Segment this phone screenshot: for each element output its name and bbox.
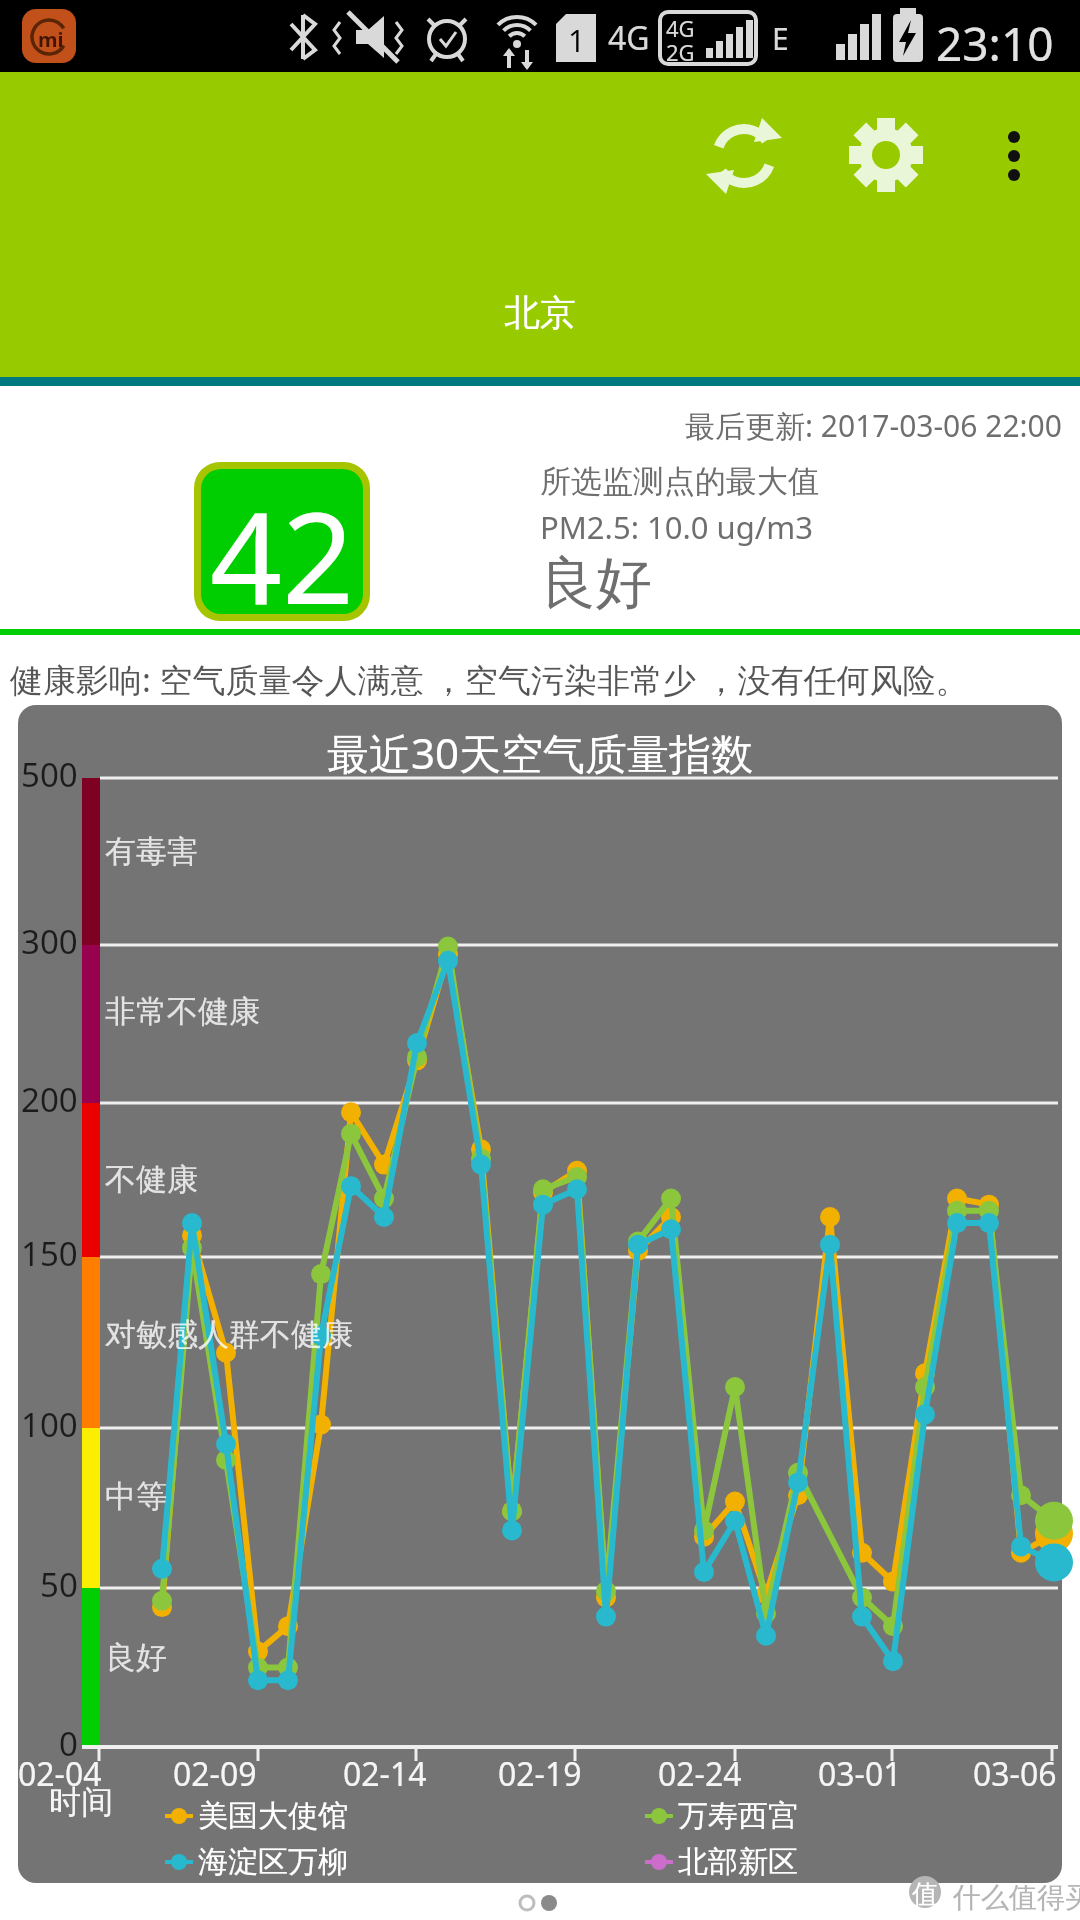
staticText: 300 xyxy=(21,919,78,964)
staticText: 0 xyxy=(59,1721,78,1766)
staticText: 03-06 xyxy=(973,1752,1057,1796)
staticText: 北部新区 xyxy=(678,1843,798,1881)
staticText: 50 xyxy=(40,1562,78,1607)
staticText: 值 xyxy=(912,1878,938,1911)
staticText: 42 xyxy=(210,469,355,614)
staticText: 美国大使馆 xyxy=(198,1797,348,1835)
staticText: 健康影响: 空气质量令人满意 ，空气污染非常少 ，没有任何风险。 xyxy=(10,657,969,702)
staticText: 非常不健康 xyxy=(105,992,260,1031)
button[interactable] xyxy=(848,118,924,194)
staticText: 海淀区万柳 xyxy=(198,1843,348,1881)
staticText: 02-24 xyxy=(658,1752,742,1796)
button[interactable] xyxy=(990,118,1040,194)
staticText: 对敏感人群不健康 xyxy=(105,1315,353,1354)
staticText: 02-14 xyxy=(343,1752,427,1796)
staticText: 02-04 xyxy=(18,1752,102,1796)
staticText: 02-19 xyxy=(498,1752,582,1796)
staticText: PM2.5: 10.0 ug/m3 xyxy=(540,506,814,548)
staticText: 100 xyxy=(21,1402,78,1447)
staticText: 不健康 xyxy=(105,1160,198,1199)
staticText: 所选监测点的最大值 xyxy=(540,462,819,501)
staticText: 03-01 xyxy=(818,1752,902,1796)
staticText: 良好 xyxy=(540,548,652,619)
staticText: 中等 xyxy=(105,1477,167,1516)
staticText: 500 xyxy=(21,752,78,797)
button[interactable] xyxy=(706,118,782,194)
staticText: mi xyxy=(38,26,64,53)
staticText: 最后更新: 2017-03-06 22:00 xyxy=(685,405,1062,446)
staticText: 02-09 xyxy=(173,1752,257,1796)
staticText: 4G xyxy=(666,13,695,43)
staticText: 有毒害 xyxy=(105,832,198,871)
staticText: 万寿西宫 xyxy=(678,1797,798,1835)
staticText: 23:10 xyxy=(936,12,1054,75)
staticText: 最近30天空气质量指数 xyxy=(327,724,754,781)
staticText: 时间 xyxy=(49,1782,113,1822)
staticText: 1 xyxy=(568,20,586,61)
staticText: 2G xyxy=(666,37,695,67)
staticText: 200 xyxy=(21,1077,78,1122)
staticText: 什么值得买 xyxy=(953,1880,1080,1915)
button[interactable]: 42 xyxy=(194,462,370,621)
staticText: 4G xyxy=(608,16,650,60)
staticText: E xyxy=(772,18,789,59)
staticText: 良好 xyxy=(105,1638,167,1677)
staticText: 150 xyxy=(21,1231,78,1276)
staticText: 北京 xyxy=(504,290,576,335)
